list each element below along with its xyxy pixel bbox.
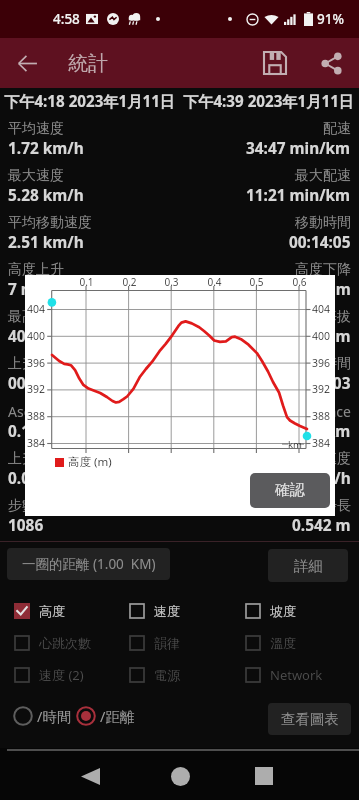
staticText: 平均速度 (8, 120, 64, 138)
staticText: 4:58 (53, 10, 80, 28)
button[interactable]: 心跳次數 (14, 634, 118, 652)
staticText: 下降速度 (295, 450, 351, 468)
staticText: 396 (312, 356, 331, 370)
staticText: 2.51 km/h (8, 232, 84, 253)
staticText: 0.2 (122, 275, 137, 289)
staticText: 7 m (323, 279, 351, 300)
staticText: 0.4 (207, 275, 222, 289)
staticText: 400 (312, 329, 331, 343)
staticText: 電源 (154, 667, 180, 683)
button[interactable]: 速度 (2) (14, 666, 118, 684)
staticText: 0.07 km/h (8, 468, 84, 489)
staticText: 最高海拔 (8, 308, 64, 326)
staticText: 91% (317, 10, 344, 28)
staticText: 平均步長 (295, 497, 351, 515)
staticText: 平均移動速度 (8, 214, 92, 232)
button[interactable]: Share (311, 43, 351, 83)
staticText: /距離 (100, 706, 135, 726)
staticText: Ascent pace (8, 402, 87, 421)
staticText: 0.11 min/km (255, 421, 351, 442)
staticText: 400 (27, 329, 46, 343)
button[interactable]: Back (7, 43, 47, 83)
staticText: 384 (27, 436, 46, 450)
staticText: 00:14:05 (289, 232, 351, 253)
button[interactable]: 韻律 (129, 634, 233, 652)
staticText: 00:06:21 (8, 373, 70, 394)
staticText: 查看圖表 (281, 710, 339, 728)
staticText: 高度 (m) (68, 454, 112, 470)
staticText: 坡度 (270, 603, 296, 619)
staticText: 404 m (8, 326, 54, 347)
button[interactable]: /距離 (76, 705, 135, 727)
staticText: 0.6 (292, 275, 307, 289)
staticText: 高度下降 (295, 261, 351, 279)
button[interactable]: 確認 (250, 473, 330, 508)
staticText: 1.72 km/h (8, 138, 84, 159)
staticText: 34:47 min/km (246, 138, 351, 159)
button[interactable]: 一圈的距離 (1.00 KM) (7, 548, 170, 580)
staticText: Network (270, 666, 323, 684)
staticText: 00:05:03 (289, 373, 351, 394)
staticText: 387 m (305, 326, 351, 347)
button[interactable]: Save (255, 43, 295, 83)
button[interactable]: Home (156, 752, 204, 800)
staticText: 392 (27, 382, 46, 396)
button[interactable]: 坡度 (245, 602, 349, 620)
staticText: 高度 (39, 603, 65, 619)
staticText: 最大配速 (295, 167, 351, 185)
button[interactable]: 電源 (129, 666, 233, 684)
button[interactable]: Back (66, 752, 114, 800)
button[interactable]: Network (245, 666, 349, 684)
staticText: 404 (27, 302, 46, 316)
staticText: 11:21 min/km (246, 185, 351, 206)
staticText: 移動時間 (295, 214, 351, 232)
button[interactable]: 溫度 (245, 634, 349, 652)
staticText: km (288, 438, 302, 451)
button[interactable]: /時間 (13, 705, 72, 727)
staticText: 心跳次數 (39, 635, 91, 651)
staticText: 7 m (8, 279, 36, 300)
button[interactable]: Recents (240, 752, 288, 800)
staticText: 最低海拔 (295, 308, 351, 326)
staticText: 配速 (323, 120, 351, 138)
staticText: 0.542 m (292, 515, 351, 536)
button[interactable]: 速度 (129, 602, 233, 620)
staticText: 392 (312, 382, 331, 396)
staticText: 384 (312, 436, 331, 450)
staticText: 統計 (68, 51, 108, 76)
staticText: 上升時間 (8, 355, 64, 373)
staticText: 確認 (275, 481, 305, 500)
staticText: 388 (27, 409, 46, 423)
staticText: 0.1 (79, 275, 94, 289)
staticText: Descent pace (263, 402, 351, 421)
button[interactable]: 查看圖表 (268, 703, 351, 735)
staticText: 速度 (154, 603, 180, 619)
staticText: 下午4:18 2023年1月11日 (4, 91, 176, 112)
staticText: 388 (312, 409, 331, 423)
staticText: 速度 (2) (39, 666, 84, 684)
staticText: 韻律 (154, 635, 180, 651)
staticText: 404 (312, 302, 331, 316)
staticText: 最大速度 (8, 167, 64, 185)
staticText: 一圈的距離 (1.00 KM) (22, 555, 156, 573)
staticText: 0.5 (249, 275, 264, 289)
staticText: 5.28 km/h (8, 185, 84, 206)
staticText: 高度上升 (8, 261, 64, 279)
button[interactable]: 高度 (14, 602, 118, 620)
staticText: 詳細 (294, 557, 323, 575)
staticText: 396 (27, 356, 46, 370)
staticText: 溫度 (270, 635, 296, 651)
staticText: 下降時間 (295, 355, 351, 373)
staticText: 下午4:39 2023年1月11日 (183, 91, 355, 112)
button[interactable]: 詳細 (268, 549, 348, 582)
staticText: 1086 (8, 515, 44, 536)
staticText: 0.12 min/m (8, 421, 94, 442)
staticText: /時間 (37, 706, 72, 726)
staticText: 步數 (8, 497, 36, 515)
staticText: 0.3 (164, 275, 179, 289)
staticText: 0.08 km/h (275, 468, 351, 489)
staticText: 上升速度 (8, 450, 64, 468)
